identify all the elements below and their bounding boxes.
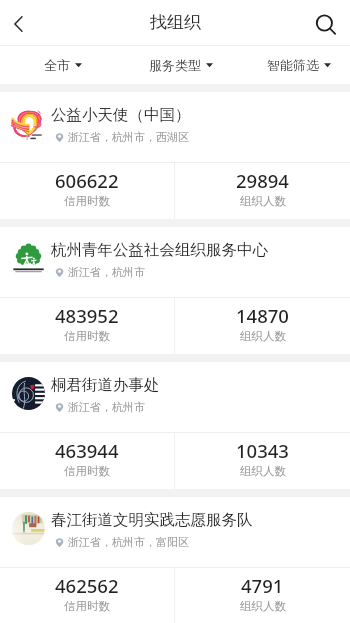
staticText: 606622	[55, 168, 119, 193]
staticText: 组织人数	[240, 329, 286, 343]
staticText: 浙江省，杭州市	[68, 400, 145, 414]
staticText: 组织人数	[240, 464, 286, 478]
staticText: 4791	[241, 573, 284, 598]
button[interactable]: 公益小天使（中国）	[0, 92, 350, 219]
staticText: 14870	[236, 303, 289, 328]
staticText: 462562	[55, 573, 119, 598]
staticText: 全市	[44, 57, 70, 73]
staticText: 信用时数	[64, 194, 110, 208]
staticText: 组织人数	[240, 599, 286, 613]
staticText: 服务类型	[149, 57, 201, 73]
button[interactable]: 智能筛选	[233, 46, 350, 84]
staticText: 浙江省，杭州市，西湖区	[68, 130, 189, 144]
staticText: 智能筛选	[267, 57, 319, 73]
button[interactable]: 服务类型	[116, 46, 233, 84]
staticText: 463944	[55, 438, 119, 463]
button[interactable]: Search	[305, 0, 350, 45]
staticText: 信用时数	[64, 464, 110, 478]
button[interactable]: 杭州青年公益社会组织服务中心	[0, 227, 350, 354]
button[interactable]: Back	[0, 3, 40, 43]
staticText: 信用时数	[64, 599, 110, 613]
staticText: 29894	[236, 168, 289, 193]
staticText: 浙江省，杭州市，富阳区	[68, 535, 189, 549]
button[interactable]: 全市	[0, 46, 116, 84]
button[interactable]: 桐君街道办事处	[0, 362, 350, 489]
staticText: 483952	[55, 303, 119, 328]
staticText: 春江街道文明实践志愿服务队	[51, 510, 253, 530]
staticText: 公益小天使（中国）	[51, 105, 191, 125]
staticText: 找组织	[150, 12, 201, 33]
staticText: 桐君街道办事处	[51, 375, 160, 395]
staticText: 杭州青年公益社会组织服务中心	[51, 240, 268, 260]
staticText: 组织人数	[240, 194, 286, 208]
staticText: 信用时数	[64, 329, 110, 343]
staticText: 浙江省，杭州市	[68, 265, 145, 279]
staticText: 10343	[236, 438, 289, 463]
button[interactable]: 春江街道文明实践志愿服务队	[0, 497, 350, 623]
